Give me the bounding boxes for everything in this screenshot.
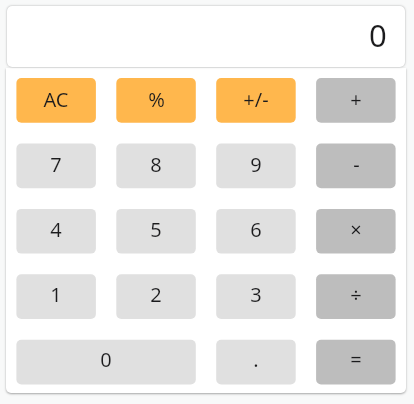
- staticText: +/-: [243, 86, 269, 113]
- button[interactable]: Calculator display, 0: [7, 6, 405, 67]
- button[interactable]: Percent: [116, 78, 196, 123]
- staticText: 5: [150, 216, 162, 243]
- button[interactable]: Two: [116, 273, 196, 318]
- staticText: 7: [50, 151, 62, 178]
- button[interactable]: One: [16, 273, 96, 318]
- staticText: 4: [50, 216, 62, 243]
- button[interactable]: Eight: [116, 143, 196, 188]
- staticText: .: [253, 346, 259, 373]
- staticText: ×: [350, 216, 362, 243]
- staticText: 6: [250, 216, 262, 243]
- button[interactable]: Nine: [216, 143, 296, 188]
- staticText: 9: [250, 151, 262, 178]
- staticText: +: [350, 86, 362, 113]
- button[interactable]: Three: [216, 273, 296, 318]
- button[interactable]: Seven: [16, 143, 96, 188]
- staticText: ÷: [350, 281, 362, 308]
- button[interactable]: Zero: [16, 338, 195, 383]
- staticText: %: [148, 86, 165, 113]
- button[interactable]: All clear: [16, 78, 96, 123]
- staticText: 0: [369, 14, 387, 56]
- button[interactable]: Multiply: [316, 208, 396, 253]
- button[interactable]: Decimal point: [216, 338, 296, 383]
- button[interactable]: Equals: [316, 338, 396, 383]
- button[interactable]: Minus: [316, 143, 396, 188]
- staticText: 3: [250, 281, 262, 308]
- button[interactable]: Toggle sign: [216, 78, 296, 123]
- button[interactable]: Four: [16, 208, 96, 253]
- staticText: 2: [150, 281, 162, 308]
- button[interactable]: Five: [116, 208, 196, 253]
- staticText: 0: [100, 346, 112, 373]
- button[interactable]: Divide: [316, 273, 396, 318]
- staticText: 1: [50, 281, 62, 308]
- staticText: =: [350, 346, 362, 373]
- staticText: -: [353, 151, 360, 178]
- button[interactable]: Six: [216, 208, 296, 253]
- staticText: 8: [150, 151, 162, 178]
- button[interactable]: Plus: [316, 78, 396, 123]
- staticText: AC: [43, 86, 69, 113]
